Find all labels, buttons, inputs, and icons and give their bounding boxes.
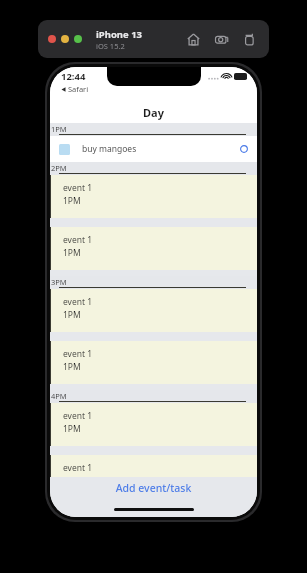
- staticText: event 1: [63, 296, 93, 308]
- staticText: 1PM: [63, 247, 81, 259]
- staticText: event 1: [63, 348, 93, 360]
- staticText: Day: [50, 105, 257, 120]
- staticText: 1PM: [63, 195, 81, 207]
- staticText: 4PM: [51, 391, 67, 401]
- button[interactable]: event 1: [50, 455, 257, 477]
- button[interactable]: event 1: [50, 227, 257, 270]
- staticText: 3PM: [51, 277, 67, 287]
- staticText: 1PM: [63, 309, 81, 321]
- button[interactable]: event 1: [50, 175, 257, 218]
- staticText: 1PM: [63, 423, 81, 435]
- button[interactable]: Home: [183, 29, 203, 49]
- button[interactable]: Screenshot: [211, 29, 231, 49]
- button[interactable]: Rotate: [239, 29, 259, 49]
- button[interactable]: buy mangoes: [50, 136, 257, 162]
- staticText: iPhone 13: [96, 28, 143, 41]
- staticText: buy mangoes: [82, 143, 137, 155]
- button[interactable]: event 1: [50, 289, 257, 332]
- staticText: Safari: [68, 84, 89, 94]
- staticText: event 1: [63, 462, 93, 474]
- staticText: iOS 15.2: [96, 41, 125, 51]
- staticText: 1PM: [63, 361, 81, 373]
- staticText: 1PM: [51, 124, 67, 134]
- staticText: event 1: [63, 234, 93, 246]
- button[interactable]: event 1: [50, 403, 257, 446]
- button[interactable]: event 1: [50, 341, 257, 384]
- staticText: 12:44: [61, 70, 86, 83]
- staticText: event 1: [63, 182, 93, 194]
- staticText: 2PM: [51, 163, 67, 173]
- button[interactable]: Add event/task: [50, 477, 257, 499]
- staticText: event 1: [63, 410, 93, 422]
- staticText: Add event/task: [50, 481, 257, 495]
